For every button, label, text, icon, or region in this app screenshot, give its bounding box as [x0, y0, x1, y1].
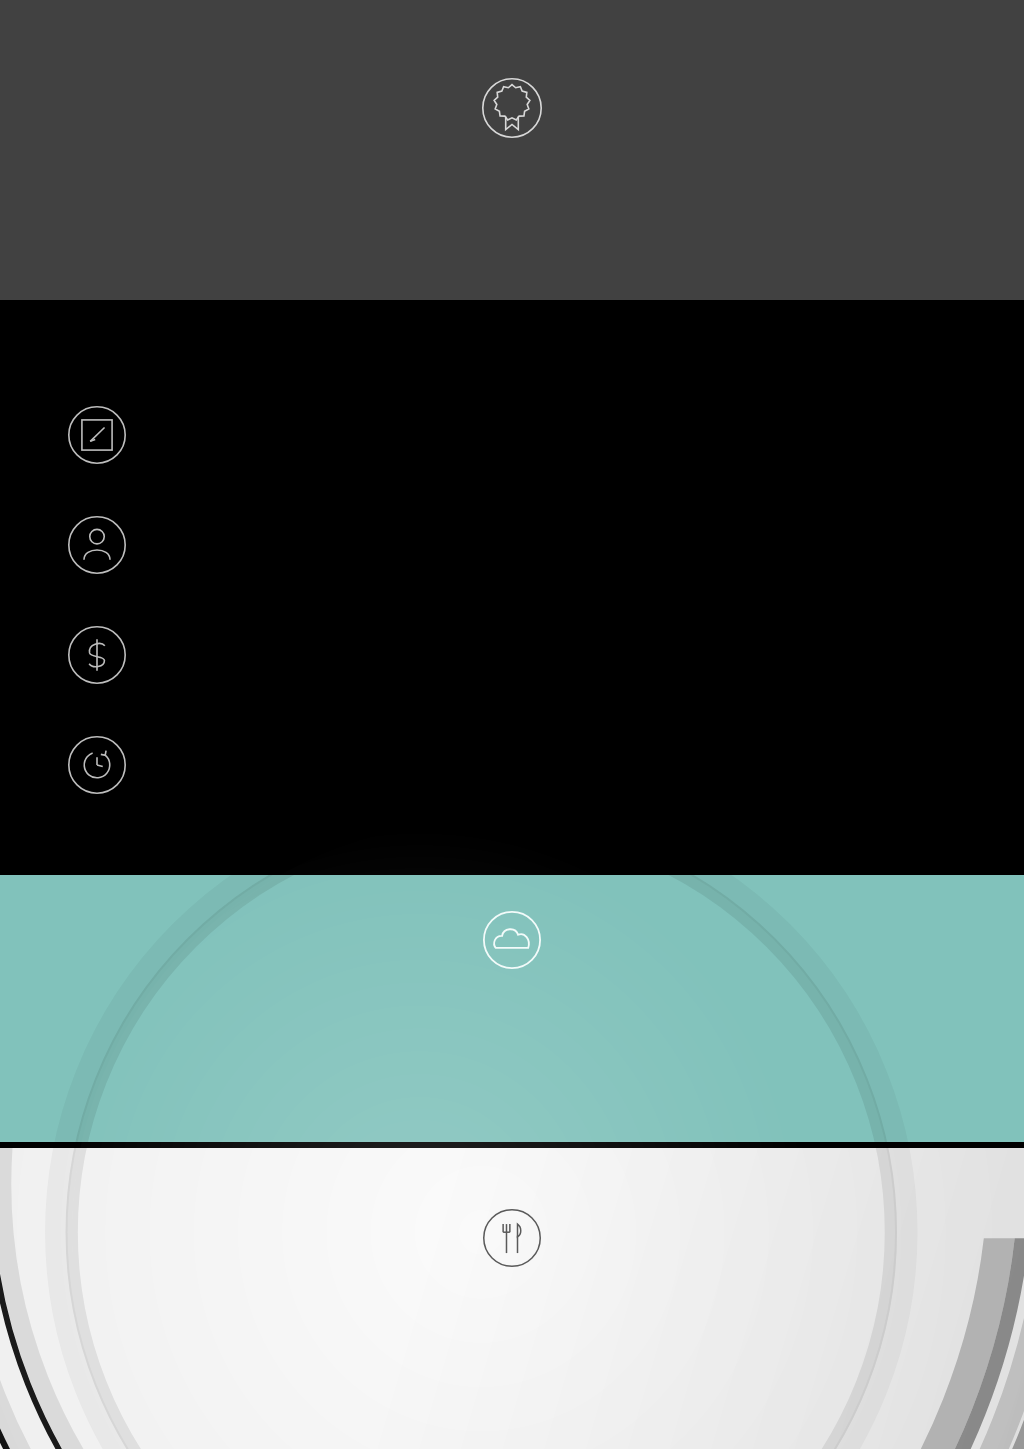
button[interactable]: Restaurant menu: [483, 1209, 541, 1267]
button[interactable]: Pricing: [68, 626, 126, 684]
button[interactable]: Profile: [68, 516, 126, 574]
button[interactable]: Reviews: [68, 406, 126, 464]
button[interactable]: Awards: [482, 78, 542, 138]
button[interactable]: History: [68, 736, 126, 794]
button[interactable]: Weather: [483, 911, 541, 969]
